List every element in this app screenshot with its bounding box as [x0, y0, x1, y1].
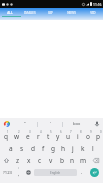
staticText: z [16, 156, 20, 165]
staticText: s [20, 144, 24, 153]
button[interactable]: “ [13, 118, 37, 130]
staticText: j [72, 144, 74, 153]
button[interactable]: m [78, 154, 89, 166]
staticText: VID [90, 11, 96, 15]
staticText: y [56, 132, 60, 141]
button[interactable]: y [53, 130, 63, 142]
button[interactable]: Enter [86, 166, 102, 179]
button[interactable]: n [67, 154, 78, 166]
button[interactable]: t [43, 130, 53, 142]
staticText: ALL [7, 11, 13, 15]
button[interactable]: ?123 [1, 166, 15, 179]
staticText: x [27, 156, 31, 165]
staticText: n [70, 156, 75, 165]
button[interactable]: v [45, 154, 56, 166]
staticText: p [96, 132, 100, 141]
button[interactable]: s [16, 142, 27, 154]
staticText: h [61, 144, 66, 153]
staticText: f [42, 144, 45, 153]
staticText: 6 [60, 130, 62, 134]
staticText: 2 [18, 130, 20, 134]
button[interactable]: a [5, 142, 16, 154]
staticText: b [60, 156, 64, 165]
staticText: GIF [48, 11, 53, 15]
staticText: ’ [50, 121, 51, 127]
button[interactable]: x [23, 154, 34, 166]
staticText: 7 [70, 130, 72, 134]
staticText: 3 [29, 130, 31, 134]
staticText: ?123 [3, 170, 13, 176]
staticText: r [37, 132, 40, 141]
staticText: e [26, 132, 30, 141]
button[interactable]: q [0, 130, 11, 142]
staticText: u [66, 132, 71, 141]
staticText: d [31, 144, 35, 153]
staticText: l [92, 144, 94, 153]
button[interactable]: e [22, 130, 33, 142]
staticText: t [47, 132, 50, 141]
button[interactable]: Backspace [89, 154, 103, 166]
staticText: “ [24, 121, 26, 127]
button[interactable]: h [58, 142, 68, 154]
button[interactable]: Voice input [91, 118, 103, 130]
button[interactable]: j [68, 142, 78, 154]
staticText: 0 [100, 130, 102, 134]
staticText: i [77, 132, 79, 141]
button[interactable]: b [56, 154, 67, 166]
button[interactable]: VID [82, 8, 103, 20]
staticText: 11:16 [93, 2, 102, 6]
button[interactable]: GIF [40, 8, 61, 20]
staticText: c [38, 156, 42, 165]
staticText: q [4, 132, 8, 141]
button[interactable]: Shift [0, 154, 13, 166]
staticText: m [80, 156, 87, 165]
button[interactable]: Space [34, 169, 77, 176]
button[interactable]: Period [77, 166, 86, 179]
staticText: v [49, 156, 53, 165]
button[interactable]: w [11, 130, 22, 142]
staticText: w [14, 132, 20, 141]
button[interactable]: u [63, 130, 73, 142]
staticText: IMAGES [24, 11, 36, 15]
staticText: 9 [90, 130, 92, 134]
button[interactable]: box [63, 118, 91, 130]
staticText: a [9, 144, 13, 153]
staticText: k [81, 144, 85, 153]
button[interactable]: r [33, 130, 43, 142]
button[interactable]: c [34, 154, 45, 166]
staticText: box [73, 121, 81, 127]
staticText: , [18, 171, 20, 178]
button[interactable]: k [78, 142, 88, 154]
button[interactable]: g [48, 142, 58, 154]
staticText: ° [18, 167, 20, 171]
staticText: 5 [50, 130, 52, 134]
staticText: o [86, 132, 90, 141]
button[interactable]: IMAGES [20, 8, 40, 20]
button[interactable]: Google Search [0, 118, 13, 130]
button[interactable]: NEWS [61, 8, 82, 20]
button[interactable]: l [88, 142, 98, 154]
staticText: 8 [80, 130, 82, 134]
button[interactable]: ALL [0, 8, 20, 20]
staticText: English [50, 171, 61, 175]
button[interactable]: d [27, 142, 38, 154]
staticText: g [51, 144, 55, 153]
button[interactable]: Comma [15, 166, 23, 179]
staticText: 1 [7, 130, 9, 134]
button[interactable]: z [13, 154, 23, 166]
staticText: NEWS [67, 11, 76, 15]
button[interactable]: i [73, 130, 83, 142]
button[interactable]: Switch language [23, 166, 34, 179]
button[interactable]: p [93, 130, 103, 142]
staticText: 4 [40, 130, 42, 134]
button[interactable]: f [38, 142, 48, 154]
button[interactable]: o [83, 130, 93, 142]
staticText: . [81, 169, 83, 176]
